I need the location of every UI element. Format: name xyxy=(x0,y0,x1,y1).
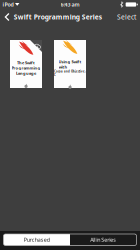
staticText: 6:43 am xyxy=(60,1,79,8)
staticText: Programming xyxy=(11,65,40,70)
button[interactable]: The Swift xyxy=(10,40,42,88)
staticText: All in Series xyxy=(90,236,116,243)
button[interactable]: All in Series xyxy=(70,234,136,245)
staticText: Purchased xyxy=(24,236,50,243)
button[interactable]: Purchased xyxy=(3,234,70,245)
staticText: The Swift xyxy=(17,60,35,65)
button[interactable]: Select xyxy=(117,9,140,25)
staticText: Language xyxy=(16,71,36,76)
staticText: Swift Programming Series xyxy=(14,13,102,21)
button[interactable]: Using Swift with xyxy=(54,40,86,88)
staticText: Using Swift with xyxy=(58,59,81,70)
button[interactable]: Back xyxy=(0,9,14,25)
staticText: Cocoa and Objective-C xyxy=(54,70,86,77)
staticText: iPod xyxy=(2,1,13,8)
staticText: Select xyxy=(117,13,136,21)
